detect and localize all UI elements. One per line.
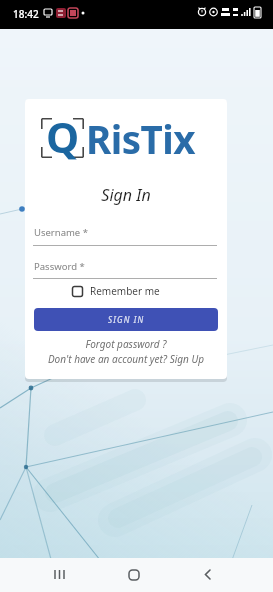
button[interactable]	[122, 563, 146, 587]
staticText: Sign In	[25, 184, 227, 206]
staticText: Password *	[34, 260, 85, 273]
staticText: Remember me	[90, 284, 160, 298]
button[interactable]: SIGN IN	[34, 308, 218, 331]
staticText: Username *	[34, 226, 88, 239]
staticText: 18:42	[13, 7, 39, 21]
button[interactable]: Don't have an account yet? Sign Up	[25, 352, 227, 366]
staticText: RisTix	[86, 113, 196, 155]
button[interactable]: Password *	[33, 259, 217, 279]
button[interactable]	[48, 563, 72, 587]
button[interactable]: Remember me	[72, 284, 160, 298]
button[interactable]: Username *	[33, 225, 217, 246]
staticText: Q	[46, 108, 80, 148]
button[interactable]	[196, 563, 220, 587]
button[interactable]: Forgot password ?	[25, 337, 227, 351]
staticText: SIGN IN	[108, 314, 145, 325]
